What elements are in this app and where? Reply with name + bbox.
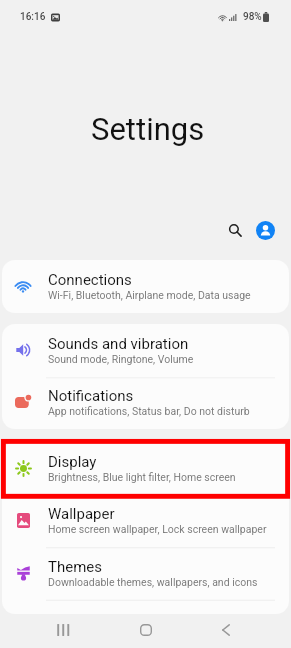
staticText: Wallpaper bbox=[48, 505, 115, 523]
staticText: 16:16 bbox=[20, 11, 46, 23]
staticText: Brightness, Blue light filter, Home scre… bbox=[48, 471, 236, 483]
button[interactable]: Notifications bbox=[2, 377, 289, 429]
button[interactable]: Search bbox=[221, 216, 249, 244]
staticText: Themes bbox=[48, 558, 103, 576]
button[interactable]: Themes bbox=[2, 547, 289, 600]
button[interactable]: Wallpaper bbox=[2, 495, 289, 547]
staticText: Wi-Fi, Bluetooth, Airplane mode, Data us… bbox=[48, 289, 251, 301]
staticText: Connections bbox=[48, 271, 132, 289]
staticText: Downloadable themes, wallpapers, and ico… bbox=[48, 576, 258, 588]
button[interactable]: Connections bbox=[2, 260, 289, 313]
button[interactable]: Account bbox=[256, 221, 275, 240]
button[interactable]: Back bbox=[208, 612, 244, 648]
button[interactable]: Display bbox=[2, 442, 289, 495]
button[interactable]: Recent apps bbox=[45, 612, 81, 648]
staticText: Sound mode, Ringtone, Volume bbox=[48, 353, 194, 365]
staticText: 98% bbox=[243, 11, 262, 23]
staticText: Notifications bbox=[48, 387, 134, 405]
staticText: Display bbox=[48, 453, 97, 471]
staticText: Home screen wallpaper, Lock screen wallp… bbox=[48, 523, 267, 535]
staticText: Sounds and vibration bbox=[48, 335, 189, 353]
staticText: Settings bbox=[91, 111, 205, 147]
button[interactable]: Home bbox=[128, 612, 164, 648]
button[interactable]: Sounds and vibration bbox=[2, 324, 289, 377]
staticText: App notifications, Status bar, Do not di… bbox=[48, 405, 250, 417]
